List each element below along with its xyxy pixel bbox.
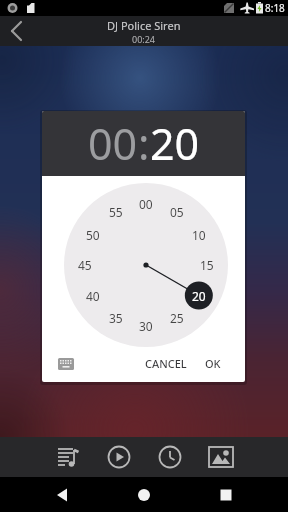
staticText: 55 bbox=[109, 204, 123, 220]
button[interactable]: 40 bbox=[79, 287, 107, 305]
staticText: 15 bbox=[200, 257, 214, 273]
button[interactable] bbox=[54, 352, 78, 376]
staticText: 10 bbox=[192, 227, 206, 243]
staticText: OK bbox=[205, 356, 221, 371]
button[interactable]: 05 bbox=[163, 203, 191, 221]
button[interactable] bbox=[208, 444, 234, 470]
staticText: 30 bbox=[139, 318, 153, 334]
staticText: 8:18 bbox=[265, 1, 285, 15]
staticText: 00 bbox=[88, 114, 138, 173]
button[interactable]: 10 bbox=[185, 226, 213, 244]
button[interactable]: OK bbox=[199, 348, 245, 379]
button[interactable]: 45 bbox=[71, 256, 99, 274]
staticText: 45 bbox=[78, 257, 92, 273]
button[interactable] bbox=[157, 444, 183, 470]
button[interactable]: 55 bbox=[102, 203, 130, 221]
button[interactable] bbox=[55, 444, 81, 470]
staticText: 05 bbox=[170, 204, 184, 220]
staticText: 35 bbox=[109, 310, 123, 326]
staticText: CANCEL bbox=[145, 356, 187, 371]
button[interactable] bbox=[132, 483, 156, 507]
button[interactable]: 00 bbox=[132, 195, 160, 213]
button[interactable]: 30 bbox=[132, 317, 160, 335]
staticText: 25 bbox=[170, 310, 184, 326]
button[interactable] bbox=[50, 483, 74, 507]
staticText: DJ Police Siren bbox=[107, 18, 181, 33]
button[interactable] bbox=[0, 16, 34, 46]
button[interactable] bbox=[214, 483, 238, 507]
staticText: 00 bbox=[139, 196, 153, 212]
button[interactable]: CANCEL bbox=[133, 348, 199, 379]
staticText: 20 bbox=[150, 114, 200, 173]
staticText: 20 bbox=[192, 288, 206, 304]
button[interactable]: 25 bbox=[163, 309, 191, 327]
staticText: 40 bbox=[86, 288, 100, 304]
button[interactable]: 35 bbox=[102, 309, 130, 327]
button[interactable]: 15 bbox=[193, 256, 221, 274]
staticText: : bbox=[138, 114, 150, 173]
staticText: 00:24 bbox=[132, 33, 156, 45]
button[interactable] bbox=[106, 444, 132, 470]
button[interactable]: 20 bbox=[185, 287, 213, 305]
staticText: 50 bbox=[86, 227, 100, 243]
button[interactable]: 50 bbox=[79, 226, 107, 244]
